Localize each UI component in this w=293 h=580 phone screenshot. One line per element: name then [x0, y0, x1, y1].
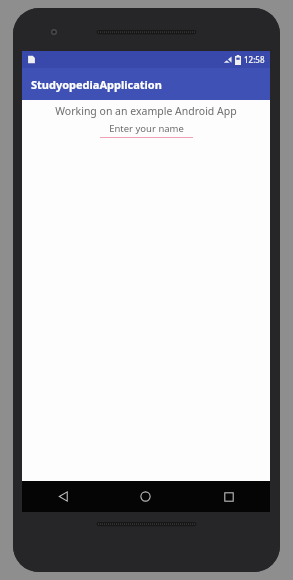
- button[interactable]: Recent apps: [187, 481, 270, 512]
- staticText: Working on an example Android App: [55, 104, 237, 118]
- button[interactable]: Home: [104, 481, 187, 512]
- button[interactable]: Back: [22, 481, 104, 512]
- button[interactable]: Enter your name: [100, 122, 193, 138]
- staticText: StudyopediaApplication: [31, 77, 162, 92]
- staticText: Enter your name: [109, 122, 184, 135]
- staticText: 12:58: [244, 54, 265, 65]
- button[interactable]: StudyopediaApplication: [22, 68, 270, 100]
